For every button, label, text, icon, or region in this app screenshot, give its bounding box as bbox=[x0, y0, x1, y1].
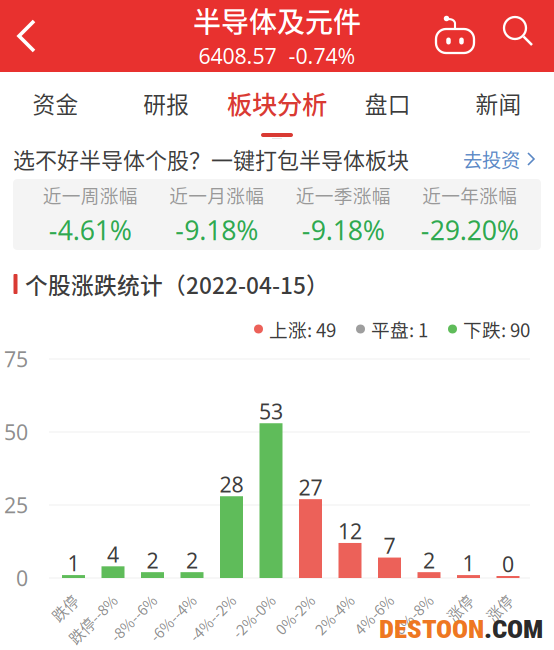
staticText: 近一月涨幅 bbox=[169, 181, 264, 208]
button[interactable]: AI assistant bbox=[431, 10, 479, 58]
staticText: 2%-4% bbox=[310, 604, 359, 625]
staticText: -9.18% bbox=[302, 212, 385, 248]
staticText: -29.20% bbox=[421, 212, 519, 248]
staticText: 选不好半导体个股？一键打包半导体板块 bbox=[13, 143, 409, 175]
staticText: 27 bbox=[298, 473, 322, 501]
staticText: -2%-0% bbox=[227, 605, 281, 627]
staticText: 6%-8% bbox=[389, 604, 438, 625]
staticText: 28 bbox=[219, 470, 243, 498]
staticText: 50 bbox=[4, 418, 28, 446]
staticText: 新闻 bbox=[476, 87, 522, 119]
staticText: 6408.57 -0.74% bbox=[198, 42, 355, 70]
button[interactable]: 资金 bbox=[0, 72, 111, 138]
staticText: 涨停 bbox=[484, 597, 514, 618]
staticText: 个股涨跌统计（2022-04-15） bbox=[25, 268, 329, 300]
staticText: 4%-6% bbox=[350, 604, 399, 625]
staticText: .COM bbox=[484, 613, 543, 645]
staticText: 跌停--8% bbox=[62, 608, 124, 629]
staticText: 1 bbox=[67, 549, 79, 577]
button[interactable]: 板块分析 bbox=[222, 72, 332, 138]
staticText: -4%--2% bbox=[183, 607, 242, 628]
staticText: -6%--4% bbox=[144, 607, 203, 628]
button[interactable]: 新闻 bbox=[443, 72, 554, 138]
staticText: 下跌: 90 bbox=[463, 315, 530, 342]
staticText: -9.18% bbox=[175, 212, 258, 248]
staticText: 上涨: 49 bbox=[269, 315, 336, 342]
button[interactable]: Search bbox=[494, 8, 542, 56]
staticText: 1 bbox=[462, 549, 474, 577]
staticText: 近一年涨幅 bbox=[422, 181, 517, 208]
staticText: 去投资 bbox=[463, 145, 520, 173]
staticText: 平盘: 1 bbox=[371, 315, 428, 342]
staticText: 盘口 bbox=[365, 87, 411, 119]
button[interactable]: 盘口 bbox=[332, 72, 443, 138]
staticText: 7 bbox=[383, 531, 395, 560]
staticText: 75 bbox=[4, 345, 28, 373]
staticText: 2 bbox=[186, 546, 198, 574]
staticText: 53 bbox=[259, 397, 283, 425]
staticText: 2 bbox=[146, 546, 158, 574]
staticText: -8%--6% bbox=[104, 607, 163, 628]
staticText: 0 bbox=[502, 550, 514, 578]
staticText: 板块分析 bbox=[227, 85, 327, 121]
staticText: 涨停 bbox=[445, 597, 475, 618]
staticText: 研报 bbox=[143, 87, 189, 119]
staticText: 2 bbox=[423, 546, 435, 574]
staticText: 跌停 bbox=[50, 597, 80, 618]
staticText: 0 bbox=[16, 564, 28, 592]
staticText: 资金 bbox=[32, 87, 78, 119]
staticText: 近一周涨幅 bbox=[43, 181, 138, 208]
button[interactable]: 选不好半导体个股？一键打包半导体板块 bbox=[0, 139, 554, 179]
button[interactable]: Back bbox=[2, 0, 58, 72]
staticText: -4.61% bbox=[49, 212, 132, 248]
staticText: 25 bbox=[4, 491, 28, 519]
staticText: 4 bbox=[107, 540, 119, 568]
staticText: 12 bbox=[338, 517, 362, 545]
staticText: 0%-2% bbox=[271, 604, 320, 625]
staticText: DESTOON bbox=[379, 613, 484, 645]
staticText: 近一季涨幅 bbox=[296, 181, 391, 208]
button[interactable]: 研报 bbox=[111, 72, 222, 138]
staticText: 半导体及元件 bbox=[193, 0, 361, 41]
